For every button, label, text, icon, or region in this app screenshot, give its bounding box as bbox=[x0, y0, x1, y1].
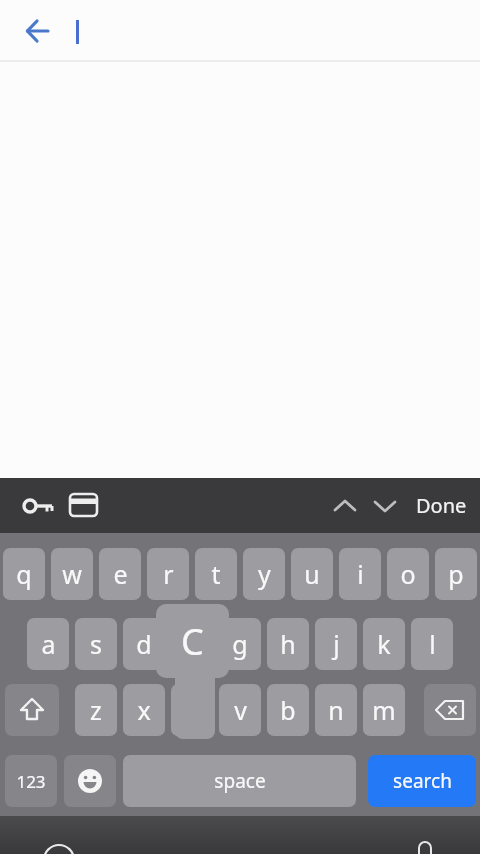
button[interactable] bbox=[64, 755, 116, 807]
button[interactable]: x bbox=[123, 684, 165, 736]
button[interactable]: u bbox=[291, 548, 333, 600]
staticText: j bbox=[333, 627, 340, 661]
button[interactable] bbox=[330, 491, 360, 521]
button[interactable]: k bbox=[363, 618, 405, 670]
button[interactable]: f bbox=[171, 618, 213, 670]
button[interactable]: g bbox=[219, 618, 261, 670]
staticText: h bbox=[280, 627, 296, 661]
staticText: z bbox=[90, 693, 102, 727]
button[interactable] bbox=[370, 491, 400, 521]
button[interactable]: o bbox=[387, 548, 429, 600]
button[interactable]: search bbox=[368, 755, 476, 807]
button[interactable]: p bbox=[435, 548, 477, 600]
button[interactable]: n bbox=[315, 684, 357, 736]
button[interactable]: z bbox=[75, 684, 117, 736]
staticText: d bbox=[136, 627, 152, 661]
staticText: f bbox=[188, 627, 197, 661]
staticText: m bbox=[372, 693, 396, 727]
staticText: C bbox=[181, 617, 204, 666]
staticText: k bbox=[377, 627, 391, 661]
button[interactable]: l bbox=[411, 618, 453, 670]
staticText: e bbox=[113, 557, 128, 591]
button[interactable]: 123 bbox=[5, 755, 57, 807]
button[interactable]: v bbox=[219, 684, 261, 736]
staticText: x bbox=[137, 693, 151, 727]
button[interactable]: a bbox=[27, 618, 69, 670]
button[interactable]: j bbox=[315, 618, 357, 670]
button[interactable] bbox=[68, 491, 100, 521]
button[interactable] bbox=[16, 10, 58, 52]
staticText: l bbox=[429, 627, 436, 661]
button[interactable]: y bbox=[243, 548, 285, 600]
staticText: r bbox=[163, 557, 174, 591]
button[interactable]: r bbox=[147, 548, 189, 600]
staticText: p bbox=[448, 557, 464, 591]
staticText: q bbox=[16, 557, 32, 591]
staticText: space bbox=[214, 768, 266, 794]
button[interactable]: b bbox=[267, 684, 309, 736]
staticText: s bbox=[90, 627, 102, 661]
button[interactable] bbox=[5, 684, 59, 736]
staticText: v bbox=[234, 693, 247, 727]
staticText: w bbox=[62, 557, 82, 591]
button[interactable]: Done bbox=[410, 478, 472, 533]
button[interactable]: e bbox=[99, 548, 141, 600]
staticText: b bbox=[280, 693, 296, 727]
button[interactable]: w bbox=[51, 548, 93, 600]
staticText: u bbox=[304, 557, 320, 591]
button[interactable]: d bbox=[123, 618, 165, 670]
button[interactable]: q bbox=[3, 548, 45, 600]
button[interactable]: s bbox=[75, 618, 117, 670]
button[interactable]: space bbox=[123, 755, 356, 807]
button[interactable]: c bbox=[171, 684, 213, 736]
staticText: 123 bbox=[16, 770, 46, 793]
button[interactable]: i bbox=[339, 548, 381, 600]
staticText: n bbox=[328, 693, 344, 727]
staticText: t bbox=[211, 557, 221, 591]
button[interactable]: h bbox=[267, 618, 309, 670]
staticText: g bbox=[232, 627, 248, 661]
button[interactable]: m bbox=[363, 684, 405, 736]
staticText: search bbox=[393, 768, 452, 794]
staticText: y bbox=[258, 557, 271, 591]
button[interactable] bbox=[22, 491, 56, 521]
button[interactable]: t bbox=[195, 548, 237, 600]
staticText: Done bbox=[416, 492, 467, 519]
staticText: o bbox=[400, 557, 416, 591]
staticText: a bbox=[41, 627, 56, 661]
staticText: i bbox=[357, 557, 364, 591]
button[interactable] bbox=[424, 684, 476, 736]
